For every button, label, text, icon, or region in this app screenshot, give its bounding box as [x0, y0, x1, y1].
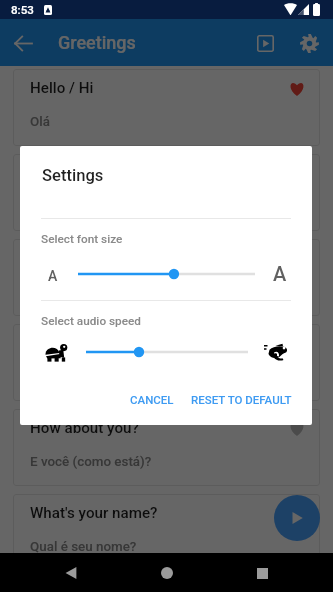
staticText: Qual é seu nome?: [30, 539, 137, 555]
button[interactable]: Are you coming?: [13, 324, 320, 401]
staticText: 8:53: [11, 3, 34, 17]
staticText: Are you coming?: [30, 334, 144, 352]
button[interactable]: CANCEL: [122, 386, 182, 413]
button[interactable]: Favorite: [282, 244, 312, 274]
button[interactable]: I'm feeling good.: [13, 239, 320, 316]
staticText: A: [48, 268, 58, 284]
button[interactable]: Favorite: [282, 329, 312, 359]
button[interactable]: What's your name?: [13, 494, 320, 571]
button[interactable]: Home: [149, 555, 185, 591]
button[interactable]: Hello / Hi: [13, 69, 320, 146]
button[interactable]: Slideshow: [247, 25, 283, 61]
button[interactable]: Navigate up: [5, 25, 41, 61]
staticText: How about you?: [30, 419, 139, 437]
staticText: RESET TO DEFAULT: [191, 393, 292, 406]
button[interactable]: Favorite: [282, 499, 312, 529]
staticText: What's your name?: [30, 504, 158, 522]
button[interactable]: [78, 264, 255, 284]
staticText: CANCEL: [130, 393, 174, 406]
button[interactable]: [86, 342, 248, 362]
staticText: A: [273, 262, 287, 285]
button[interactable]: Back: [53, 555, 89, 591]
staticText: Select font size: [41, 232, 123, 246]
staticText: How are you?: [30, 164, 122, 182]
button[interactable]: Settings: [291, 25, 327, 61]
staticText: Settings: [42, 166, 104, 185]
button[interactable]: How are you?: [13, 154, 320, 231]
button[interactable]: Play all: [274, 495, 320, 541]
staticText: Hello / Hi: [30, 79, 94, 97]
button[interactable]: Favorite: [282, 74, 312, 104]
button[interactable]: How about you?: [13, 409, 320, 486]
staticText: Greetings: [58, 32, 136, 53]
button[interactable]: Favorite: [282, 414, 312, 444]
staticText: Select audio speed: [41, 314, 141, 328]
button[interactable]: RESET TO DEFAULT: [183, 386, 300, 413]
staticText: E você (como está)?: [30, 454, 152, 470]
button[interactable]: Recent apps: [244, 555, 280, 591]
staticText: Olá: [30, 114, 50, 130]
